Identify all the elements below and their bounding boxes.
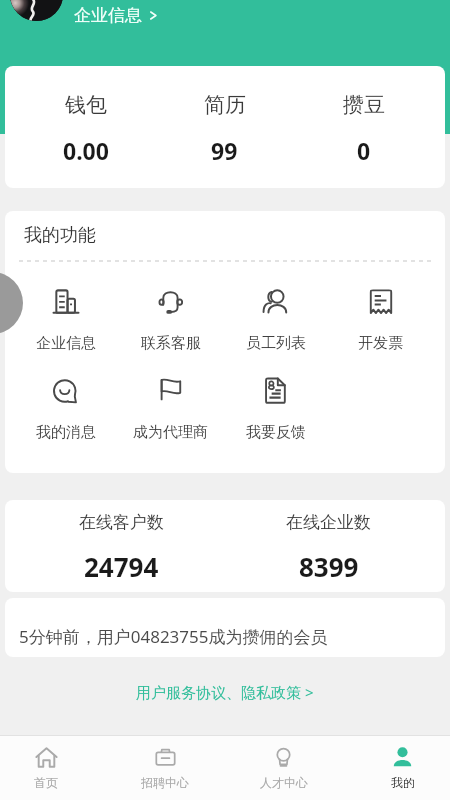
button[interactable]: 攒豆: [294, 92, 433, 166]
staticText: 企业信息: [36, 334, 96, 353]
staticText: 8399: [299, 549, 359, 584]
staticText: 5分钟前，用户04823755成为攒佣的会员: [19, 625, 328, 648]
button[interactable]: 在线企业数: [225, 512, 432, 584]
button[interactable]: 招聘中心: [109, 746, 221, 790]
staticText: 我的消息: [36, 423, 96, 442]
staticText: 成为代理商: [133, 423, 208, 442]
staticText: 首页: [34, 775, 58, 790]
button[interactable]: 成为代理商: [118, 377, 223, 442]
button[interactable]: 我的: [346, 746, 450, 790]
staticText: 攒豆: [343, 92, 385, 118]
staticText: 在线客户数: [79, 512, 164, 533]
staticText: 0.00: [63, 135, 109, 166]
staticText: 开发票: [358, 334, 403, 353]
button[interactable]: 开发票: [328, 288, 433, 353]
staticText: 0: [357, 135, 371, 166]
staticText: 我要反馈: [246, 423, 306, 442]
staticText: 简历: [204, 92, 246, 118]
staticText: 人才中心: [260, 775, 308, 790]
button[interactable]: 钱包: [17, 92, 155, 166]
staticText: 在线企业数: [286, 512, 371, 533]
button[interactable]: Avatar: [10, 0, 63, 21]
staticText: 我的功能: [24, 224, 96, 247]
button[interactable]: 员工列表: [223, 288, 328, 353]
button[interactable]: 企业信息: [74, 5, 159, 26]
button[interactable]: 在线客户数: [18, 512, 225, 584]
button[interactable]: 简历: [155, 92, 294, 166]
button[interactable]: 联系客服: [118, 288, 223, 353]
button[interactable]: 首页: [0, 746, 102, 790]
button[interactable]: 人才中心: [227, 746, 340, 790]
button[interactable]: 我的消息: [14, 377, 118, 442]
staticText: 用户服务协议、隐私政策 >: [136, 682, 314, 702]
staticText: 99: [211, 135, 238, 166]
staticText: 招聘中心: [141, 775, 189, 790]
staticText: 钱包: [65, 92, 107, 118]
button[interactable]: 企业信息: [14, 288, 118, 353]
staticText: 联系客服: [141, 334, 201, 353]
staticText: 员工列表: [246, 334, 306, 353]
staticText: 我的: [391, 775, 415, 790]
staticText: 24794: [84, 549, 159, 584]
button[interactable]: 用户服务协议、隐私政策 >: [0, 682, 450, 702]
button[interactable]: 我要反馈: [223, 377, 328, 442]
staticText: 企业信息: [74, 5, 142, 26]
